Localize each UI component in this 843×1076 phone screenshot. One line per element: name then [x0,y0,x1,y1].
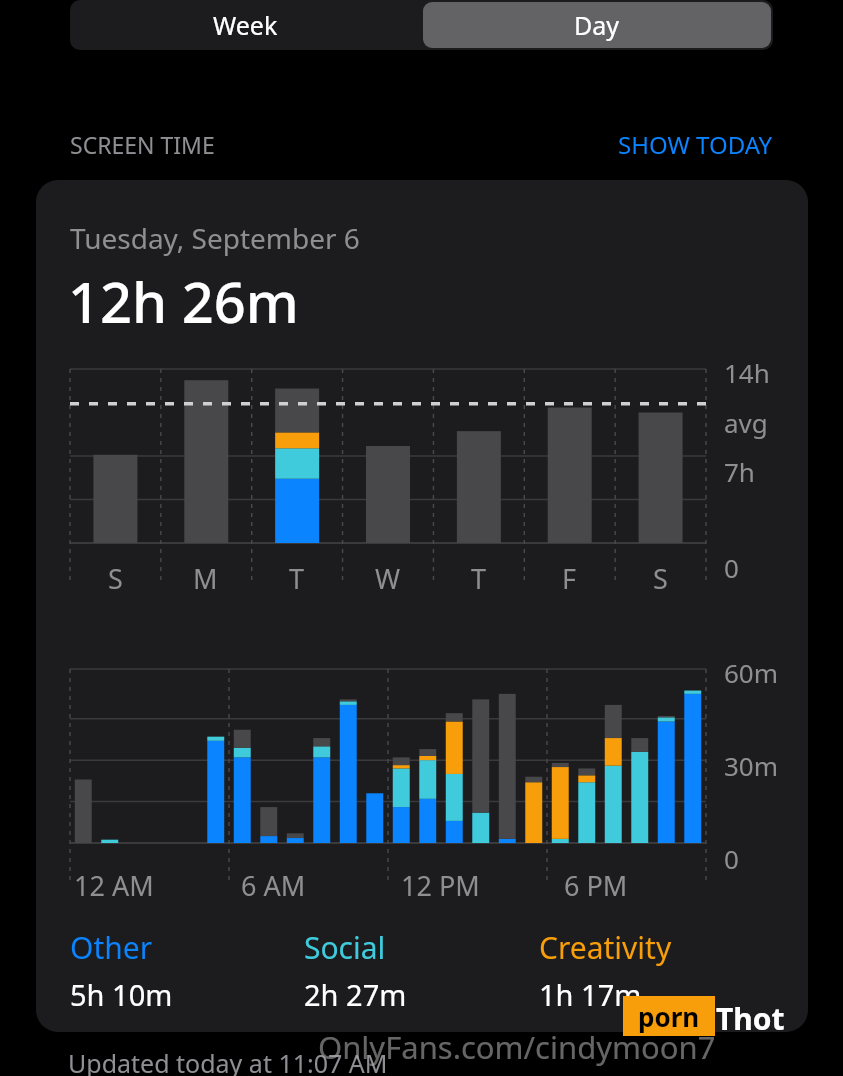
staticText: 0 [724,841,739,876]
staticText: 2h 27m [304,975,407,1014]
button[interactable]: Day [423,2,771,48]
staticText: OnlyFans.com/cindymoon7 [318,1026,716,1068]
staticText: 6 PM [564,867,628,904]
staticText: S [653,560,668,597]
staticText: S [108,560,123,597]
button[interactable]: Other [70,927,304,1014]
staticText: Other [70,927,153,968]
staticText: Social [304,927,386,968]
staticText: 30m [724,748,779,783]
button[interactable]: Week [70,0,421,50]
staticText: Updated today at 11:07 AM [68,1046,388,1076]
staticText: Day [574,8,620,42]
staticText: avg [724,405,768,440]
staticText: 1h 17m [539,975,642,1014]
staticText: Week [213,8,278,42]
button[interactable]: Creativity [539,927,774,1014]
staticText: SHOW TODAY [618,128,773,161]
staticText: 60m [724,655,779,690]
staticText: SCREEN TIME [70,129,215,160]
staticText: Tuesday, September 6 [70,219,360,257]
staticText: 6 AM [241,867,306,904]
staticText: 14h [724,355,770,390]
staticText: T [471,560,487,597]
staticText: 12h 26m [68,263,299,339]
staticText: 12 PM [401,867,480,904]
staticText: 7h [724,454,755,489]
staticText: T [289,560,305,597]
staticText: 5h 10m [70,975,173,1014]
button[interactable]: SHOW TODAY [618,128,773,161]
staticText: Thot [716,998,785,1039]
staticText: Creativity [539,927,672,968]
staticText: F [562,560,577,597]
staticText: 0 [724,550,739,585]
button[interactable]: Tuesday, September 6 [36,180,808,1032]
button[interactable]: Social [304,927,539,1014]
staticText: 12 AM [74,867,154,904]
staticText: M [193,560,218,597]
staticText: porn [638,999,700,1034]
staticText: W [375,560,401,597]
